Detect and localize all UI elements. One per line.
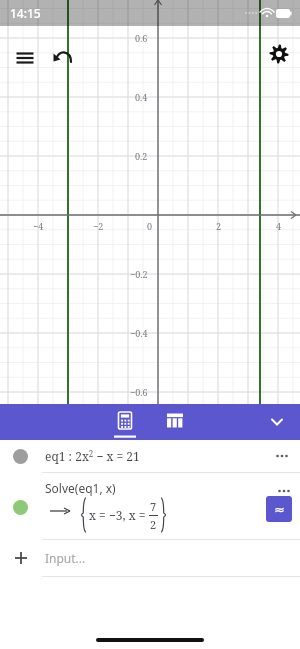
button[interactable]: Collapse xyxy=(260,405,294,439)
staticText: 4 xyxy=(276,220,282,232)
staticText: 14:15 xyxy=(10,5,41,21)
button[interactable]: Approximate xyxy=(266,496,292,522)
other: Add row xyxy=(13,550,29,566)
button[interactable]: Table xyxy=(157,404,193,440)
button[interactable]: Add row xyxy=(0,540,300,576)
button[interactable]: Menu xyxy=(9,42,41,74)
staticText: 2 xyxy=(150,517,157,532)
staticText: Solve(eq1, x) xyxy=(45,480,116,496)
staticText: eq1 : 2x2 − x = 21 xyxy=(45,448,140,464)
button[interactable]: Toggle solution xyxy=(0,473,300,539)
button[interactable]: Calculator xyxy=(107,404,143,440)
staticText: 0.4 xyxy=(135,91,148,103)
button[interactable]: More options xyxy=(274,481,294,501)
button[interactable]: Toggle equation xyxy=(13,449,28,464)
button[interactable]: Undo xyxy=(47,42,79,74)
staticText: 0 xyxy=(147,220,153,232)
staticText: x = −3, x = xyxy=(89,507,146,523)
staticText: −4 xyxy=(33,220,44,232)
staticText: 0.6 xyxy=(135,32,148,44)
staticText: −2 xyxy=(93,220,104,232)
staticText: 7 xyxy=(150,499,157,514)
staticText: 2 xyxy=(216,220,222,232)
staticText: Input... xyxy=(45,550,86,566)
button[interactable]: Toggle solution xyxy=(13,500,28,515)
staticText: −0.4 xyxy=(130,327,148,339)
staticText: 0.2 xyxy=(135,150,148,162)
button[interactable]: Toggle equation xyxy=(0,440,300,472)
staticText: −0.6 xyxy=(130,386,148,398)
button[interactable]: More options xyxy=(272,446,292,466)
staticText: ≈ xyxy=(274,502,285,517)
button[interactable]: Settings xyxy=(263,38,295,70)
staticText: −0.2 xyxy=(130,268,148,280)
